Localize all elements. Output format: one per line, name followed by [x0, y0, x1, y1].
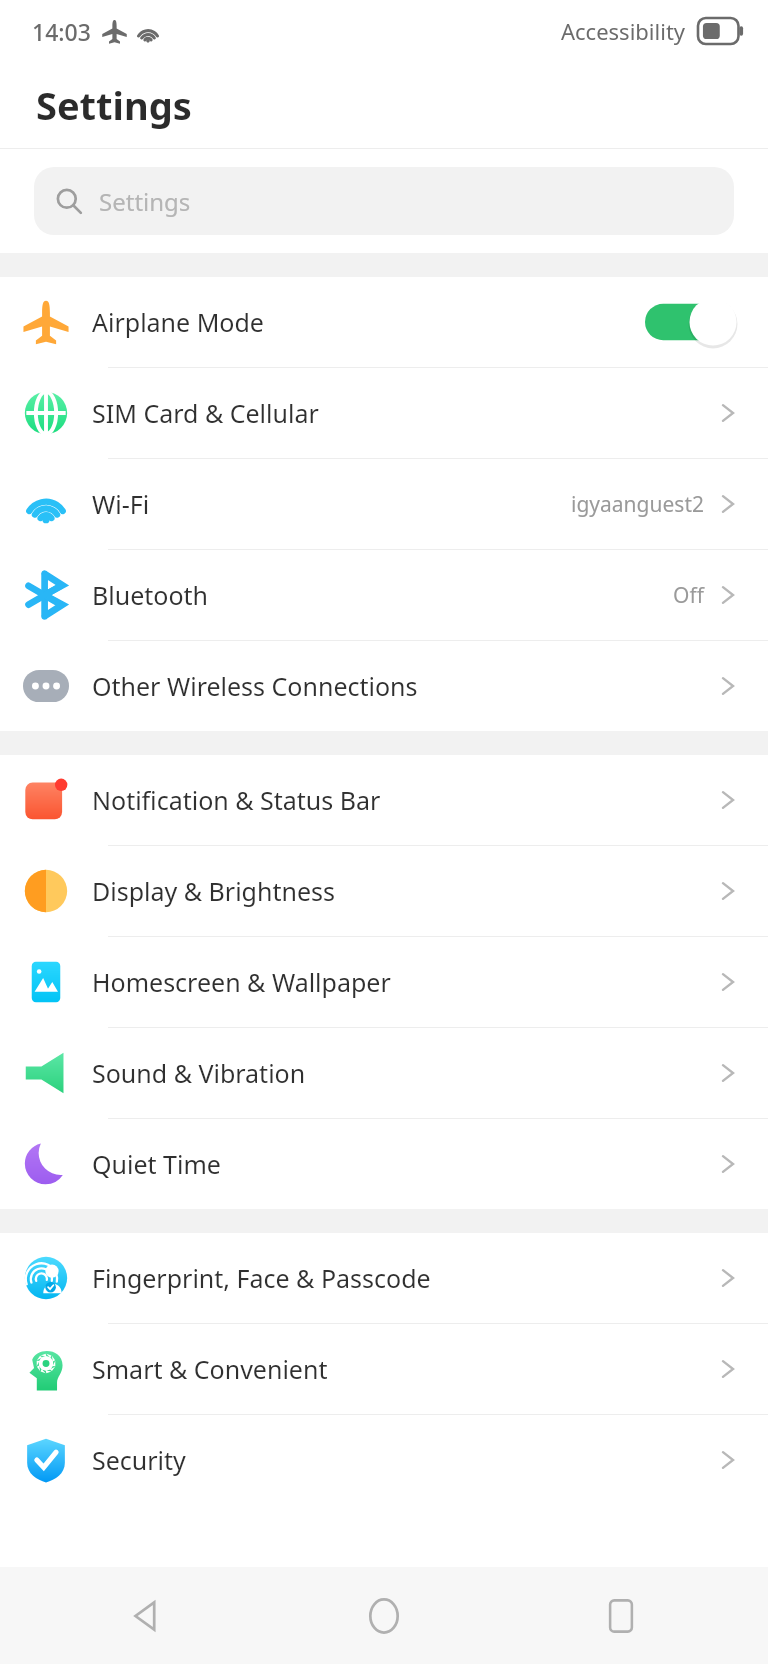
button[interactable]: Notification & Status Bar [0, 755, 768, 846]
staticText: Other Wireless Connections [92, 669, 418, 703]
button[interactable]: SIM Card & Cellular [0, 368, 768, 459]
staticText: Bluetooth [92, 578, 209, 612]
staticText: Airplane Mode [92, 305, 264, 339]
staticText: Display & Brightness [92, 874, 335, 908]
button[interactable]: Homescreen & Wallpaper [0, 937, 768, 1028]
button[interactable]: Settings [34, 167, 734, 235]
button[interactable]: Other Wireless Connections [0, 641, 768, 731]
staticText: igyaanguest2 [571, 490, 704, 519]
button[interactable]: Home [294, 1567, 474, 1664]
button[interactable]: Quiet Time [0, 1119, 768, 1209]
button[interactable]: Airplane Mode [0, 277, 768, 368]
staticText: Notification & Status Bar [92, 783, 381, 817]
button[interactable]: Display & Brightness [0, 846, 768, 937]
staticText: Smart & Convenient [92, 1352, 328, 1386]
staticText: Fingerprint, Face & Passcode [92, 1261, 431, 1295]
button[interactable]: Bluetooth [0, 550, 768, 641]
staticText: Homescreen & Wallpaper [92, 965, 391, 999]
button[interactable]: Security [0, 1415, 768, 1505]
button[interactable]: Back [57, 1567, 237, 1664]
button[interactable]: Smart & Convenient [0, 1324, 768, 1415]
staticText: Off [673, 581, 704, 610]
button[interactable]: Wi-Fi [0, 459, 768, 550]
button[interactable]: Sound & Vibration [0, 1028, 768, 1119]
staticText: Wi-Fi [92, 487, 150, 521]
staticText: Security [92, 1443, 186, 1477]
staticText: Sound & Vibration [92, 1056, 306, 1090]
staticText: Settings [99, 185, 191, 218]
staticText: Quiet Time [92, 1147, 221, 1181]
staticText: SIM Card & Cellular [92, 396, 319, 430]
staticText: 14:03 [32, 16, 91, 47]
staticText: Settings [36, 79, 192, 131]
button[interactable]: Recent apps [531, 1567, 711, 1664]
button[interactable]: Airplane Mode toggle [645, 298, 735, 346]
staticText: Accessibility [561, 16, 686, 46]
button[interactable]: Fingerprint, Face & Passcode [0, 1233, 768, 1324]
